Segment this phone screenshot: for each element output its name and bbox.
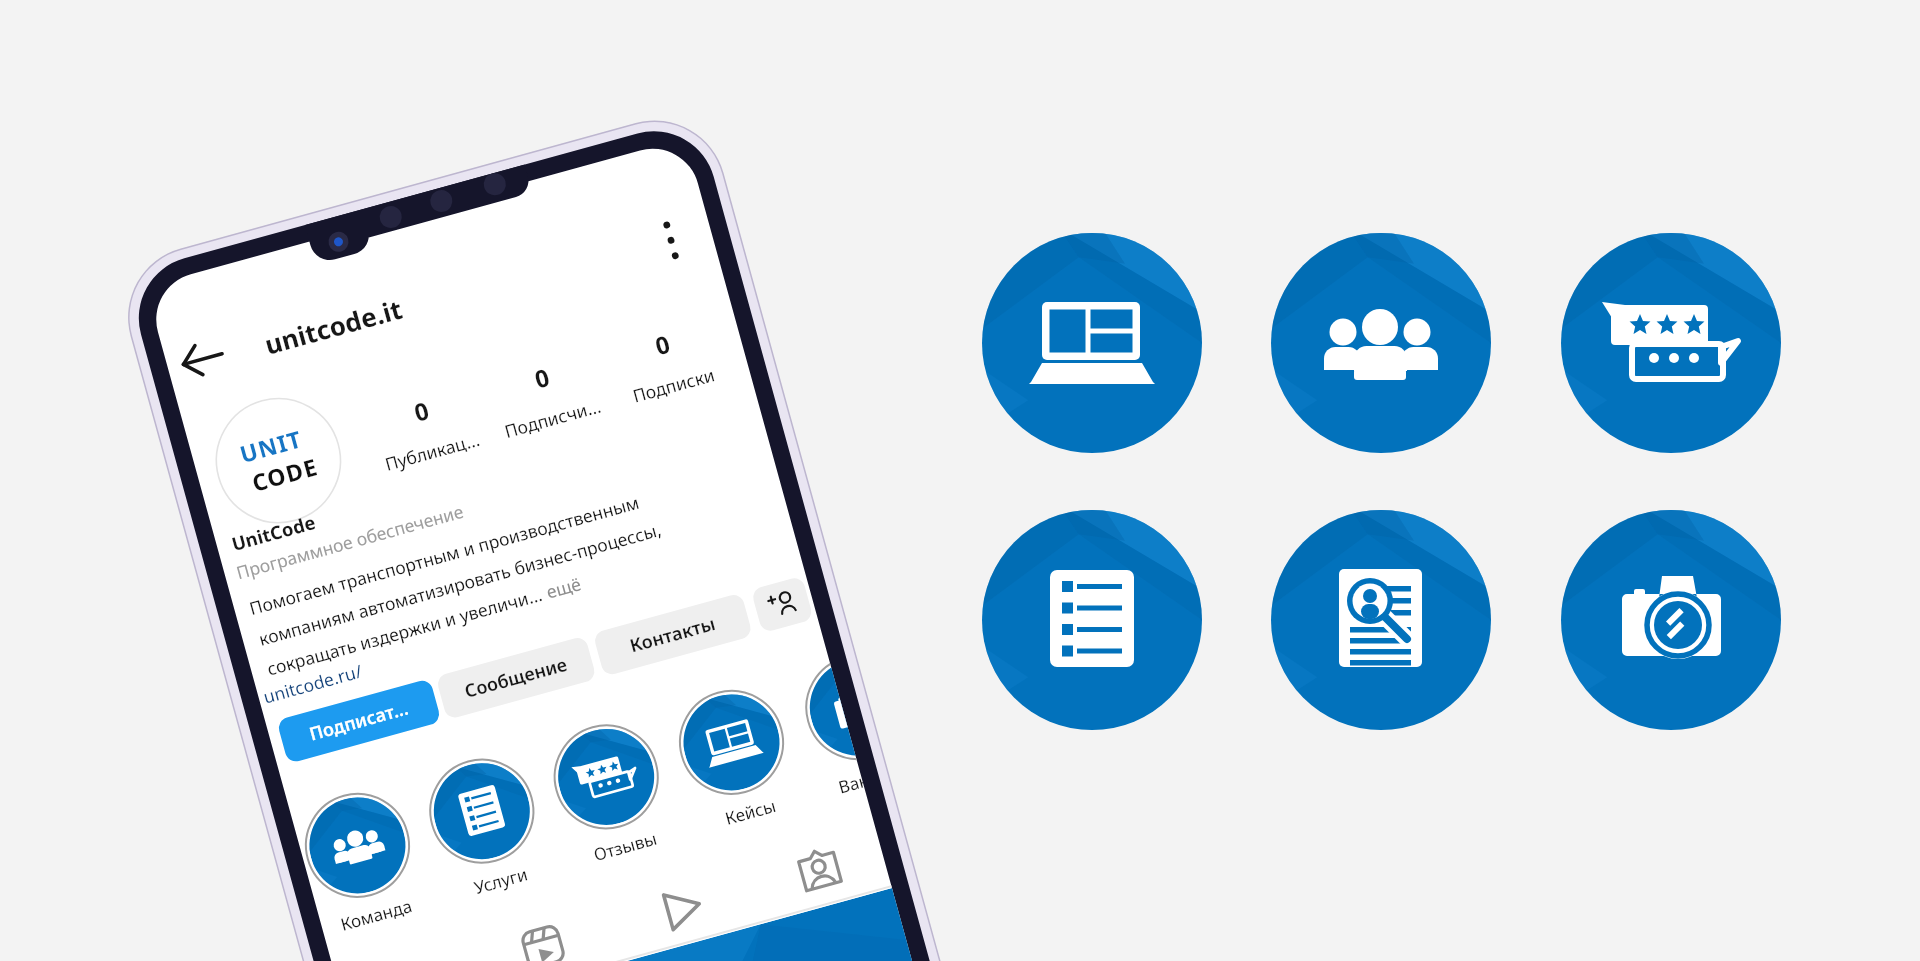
button[interactable]: UnitCode Instagram profile preview xyxy=(0,0,1920,961)
